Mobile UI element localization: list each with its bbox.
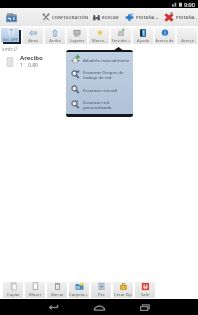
button[interactable]: Home — [93, 301, 106, 314]
staticText: PESTAÑA - — [176, 15, 198, 20]
staticText: smb:// — [2, 46, 18, 53]
staticText: Borrar — [51, 292, 64, 298]
staticText: Arriba — [49, 38, 61, 43]
staticText: PESTAÑA + — [136, 15, 159, 20]
staticText: Ayuda — [137, 38, 149, 43]
staticText: Atras — [28, 38, 38, 43]
button[interactable]: Atras — [23, 28, 43, 44]
button[interactable]: Per. — [91, 282, 111, 298]
staticText: Mover — [29, 292, 42, 298]
staticText: Escanear red wifi — [83, 87, 118, 93]
button[interactable]: Acerca de ... — [155, 28, 175, 44]
staticText: CONFIGURACIÓN — [52, 15, 89, 20]
button[interactable]: Recents — [139, 301, 152, 314]
button[interactable]: Acerca — [177, 28, 197, 44]
staticText: Salir — [141, 292, 150, 298]
button[interactable]: Añadirlo manualmente — [66, 52, 133, 67]
button[interactable]: Back — [47, 301, 60, 314]
button[interactable]: Sel. OFF — [1, 28, 21, 44]
button[interactable]: Escanear red wifi — [66, 82, 133, 97]
button[interactable]: Servidor + — [111, 28, 131, 44]
staticText: 9:00 — [184, 1, 195, 8]
button[interactable]: Escanear red personalizada — [66, 97, 133, 112]
staticText: Arecibo — [20, 54, 43, 62]
button[interactable]: Marca... — [89, 28, 109, 44]
button[interactable]: Lugares — [67, 28, 87, 44]
staticText: Crear Zip — [114, 292, 132, 298]
button[interactable]: PESTAÑA + — [125, 8, 159, 26]
staticText: 1 0.80 — [20, 62, 38, 69]
staticText: Escanear Grupos de trabajo de red — [83, 69, 124, 80]
staticText: Sel. OFF — [3, 37, 18, 42]
button[interactable]: Mover — [25, 282, 45, 298]
button[interactable]: Crear Zip — [113, 282, 133, 298]
staticText: Escanear red personalizada — [83, 99, 112, 110]
button[interactable]: Ayuda — [133, 28, 153, 44]
staticText: Per. — [98, 292, 106, 298]
button[interactable]: Copiar — [3, 282, 23, 298]
button[interactable]: CONFIGURACIÓN — [42, 8, 89, 26]
button[interactable]: BUSCAR — [93, 8, 119, 26]
staticText: Marca... — [92, 38, 107, 43]
button[interactable]: Arriba — [45, 28, 65, 44]
staticText: BUSCAR — [102, 15, 119, 20]
staticText: Carpeta + — [69, 292, 89, 298]
button[interactable]: App — [4, 10, 18, 24]
button[interactable]: Carpeta + — [69, 282, 89, 298]
staticText: Lugares — [69, 38, 85, 43]
button[interactable]: Arecibo — [2, 54, 66, 69]
staticText: Servidor + — [111, 38, 131, 43]
staticText: Añadirlo manualmente — [83, 57, 130, 63]
staticText: Acerca de ... — [155, 38, 175, 43]
button[interactable]: PESTAÑA - — [164, 8, 198, 26]
button[interactable]: Salir — [135, 282, 155, 298]
staticText: Acerca — [181, 38, 194, 43]
button[interactable]: Escanear Grupos de trabajo de red — [66, 67, 133, 82]
button[interactable]: Borrar — [47, 282, 67, 298]
staticText: Copiar — [7, 292, 20, 298]
